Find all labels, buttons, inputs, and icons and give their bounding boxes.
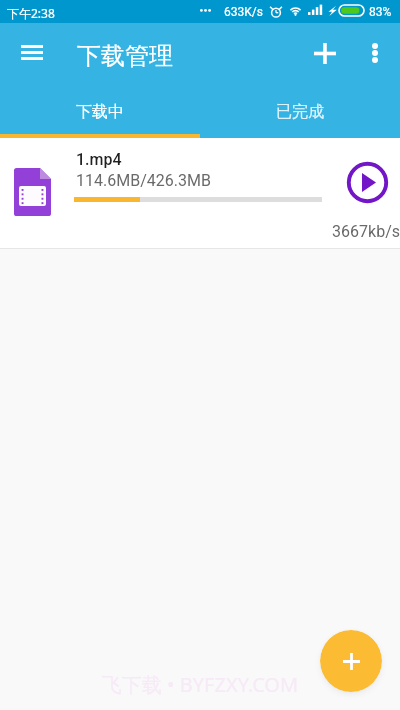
staticText: 1.mp4 <box>76 150 122 169</box>
staticText: 83% <box>369 5 392 19</box>
staticText: 下载管理 <box>77 41 173 71</box>
staticText: 633K/s <box>224 5 263 19</box>
staticText: 已完成 <box>276 102 324 122</box>
staticText: 下午2:38 <box>7 5 55 21</box>
button[interactable]: Add download <box>320 630 382 692</box>
staticText: 飞下载 • BYFZXY.COM <box>0 671 400 698</box>
button[interactable]: Menu <box>9 30 54 75</box>
button[interactable]: Add <box>303 31 347 75</box>
staticText: 下载中 <box>76 102 124 122</box>
staticText: 3667kb/s <box>0 222 400 241</box>
staticText: 114.6MB/426.3MB <box>76 171 211 190</box>
button[interactable]: 下载中 <box>0 90 200 138</box>
button[interactable]: 已完成 <box>200 90 400 138</box>
button[interactable]: 1.mp4 <box>0 138 400 249</box>
button[interactable]: Play <box>344 159 390 205</box>
button[interactable]: More options <box>353 31 397 75</box>
